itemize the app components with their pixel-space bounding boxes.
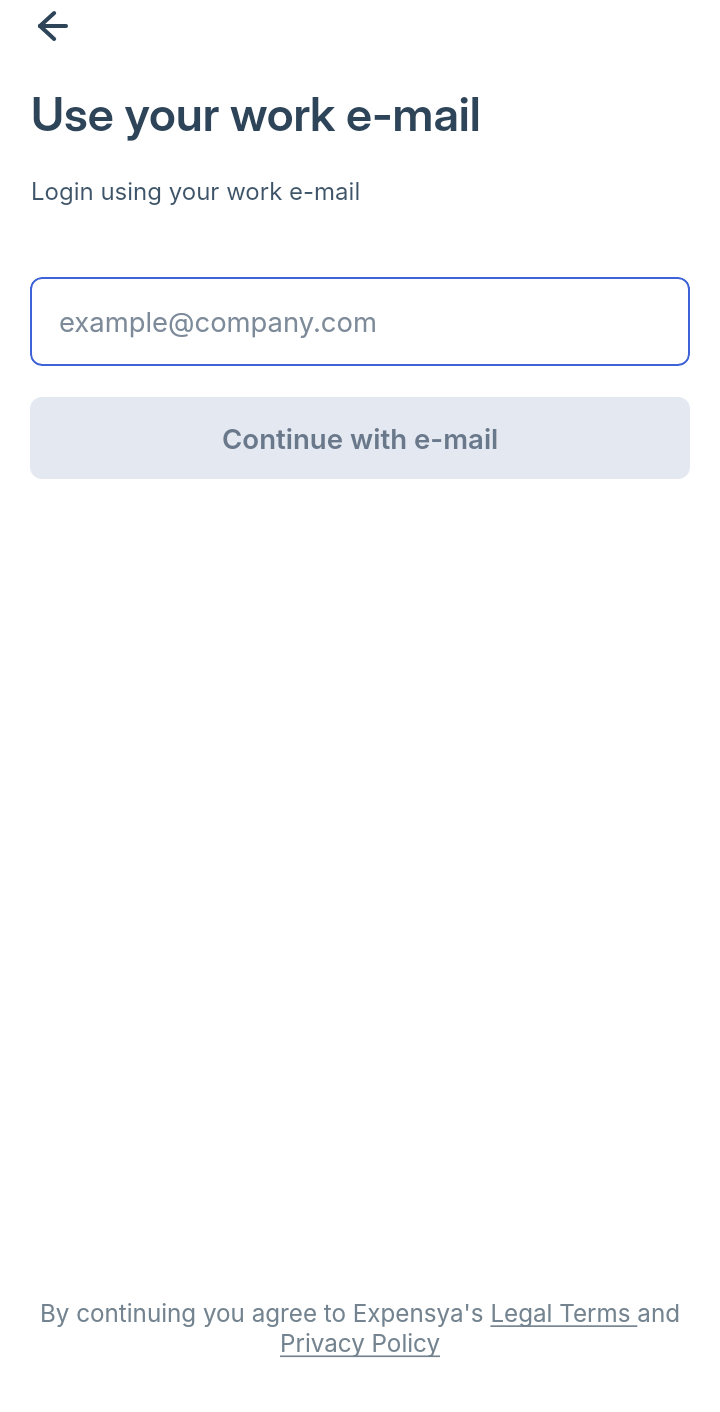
button[interactable]: Back [24, 0, 82, 55]
button[interactable]: By continuing you agree to Expensya's Le… [36, 1299, 684, 1358]
staticText: example@company.com [59, 305, 377, 338]
staticText: Login using your work e-mail [31, 177, 361, 206]
staticText: By continuing you agree to Expensya's Le… [36, 1299, 684, 1358]
button[interactable]: example@company.com [30, 277, 690, 366]
staticText: Continue with e-mail [222, 422, 499, 455]
button[interactable]: Continue with e-mail [30, 397, 690, 479]
staticText: Use your work e-mail [31, 85, 481, 142]
